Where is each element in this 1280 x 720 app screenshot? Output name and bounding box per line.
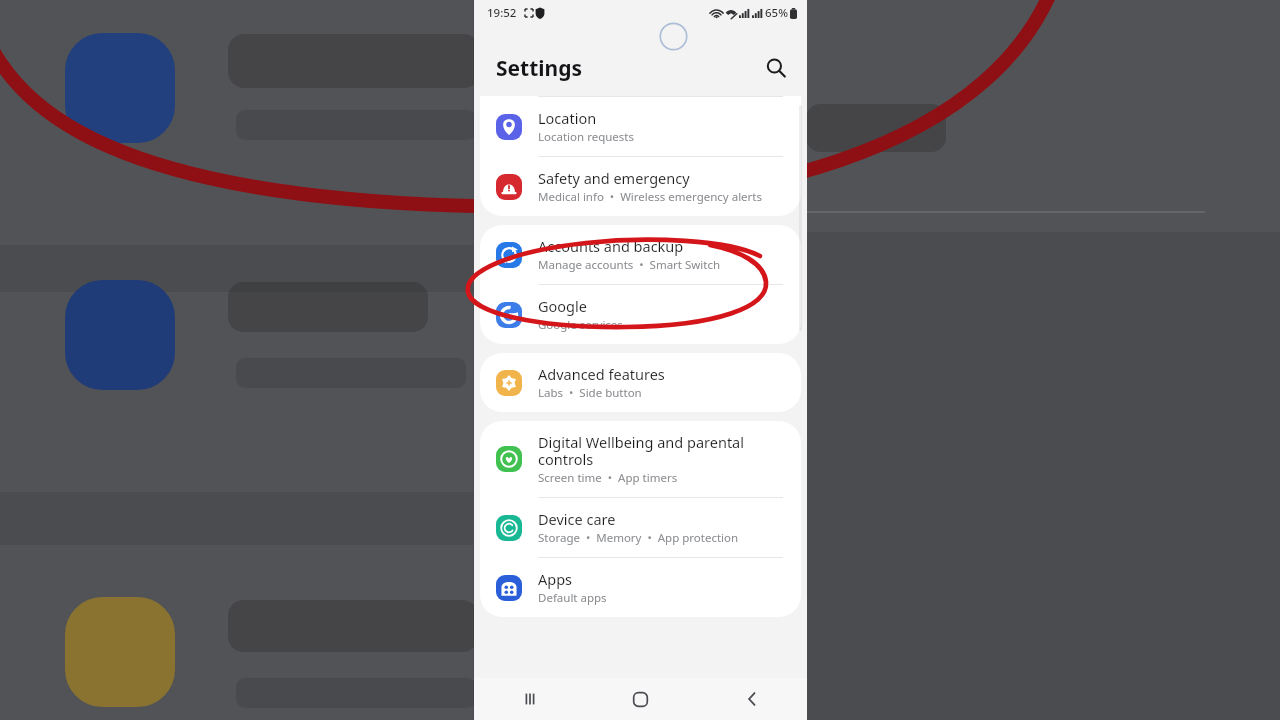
button[interactable]: Accounts and backup [480,225,801,284]
button[interactable]: Back [696,678,807,720]
button[interactable]: Advanced features [480,353,801,412]
button[interactable]: Safety and emergency [480,157,801,216]
staticText: Location requests [538,129,634,145]
staticText: 65% [765,5,788,21]
staticText: Settings [496,54,583,83]
button[interactable]: Apps [480,558,801,617]
staticText: Default apps [538,590,607,606]
staticText: Advanced features [538,364,665,384]
staticText: Google [538,296,587,316]
staticText: Manage accounts • Smart Switch [538,257,721,273]
staticText: Digital Wellbeing and parental controls [538,432,756,469]
staticText: Medical info • Wireless emergency alerts [538,189,762,205]
staticText: Storage • Memory • App protection [538,530,739,546]
staticText: Accounts and backup [538,236,684,256]
staticText: Safety and emergency [538,168,690,188]
button[interactable]: Digital Wellbeing and parental controls [480,421,801,497]
staticText: Device care [538,509,616,529]
button[interactable]: Search [759,51,793,85]
staticText: Apps [538,569,573,589]
staticText: Screen time • App timers [538,470,678,486]
button[interactable]: Location [480,97,801,156]
button[interactable]: Google [480,285,801,344]
staticText: Location [538,108,597,128]
staticText: Labs • Side button [538,385,642,401]
staticText: Google services [538,317,623,333]
button[interactable]: Device care [480,498,801,557]
staticText: 19:52 [487,5,517,21]
button[interactable]: Home [585,678,696,720]
button[interactable]: Recent apps [474,678,585,720]
